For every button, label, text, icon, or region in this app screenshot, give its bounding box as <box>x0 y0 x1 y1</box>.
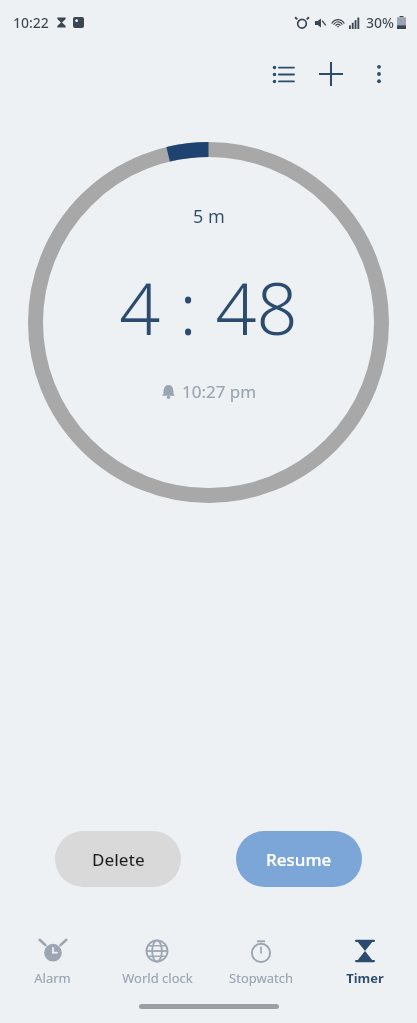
button[interactable]: More options <box>355 50 403 98</box>
button[interactable]: Timer list <box>259 50 307 98</box>
staticText: Delete <box>92 848 145 871</box>
button[interactable]: Add timer <box>307 50 355 98</box>
button[interactable]: Alarm <box>0 939 105 987</box>
staticText: Resume <box>266 848 332 871</box>
staticText: 5 m <box>193 204 225 229</box>
staticText: Timer <box>346 969 384 987</box>
staticText: Stopwatch <box>229 969 293 987</box>
button[interactable]: Resume <box>236 831 362 887</box>
staticText: Alarm <box>34 969 71 987</box>
button[interactable]: Timer <box>313 939 417 987</box>
button[interactable]: Stopwatch <box>209 939 313 987</box>
staticText: 10:22 <box>13 13 49 32</box>
button[interactable]: Delete <box>55 831 181 887</box>
staticText: 30% <box>366 13 394 32</box>
staticText: 10:27 pm <box>182 380 257 403</box>
button[interactable]: World clock <box>105 939 209 987</box>
staticText: World clock <box>122 969 193 987</box>
staticText: 4 : 48 <box>119 258 298 356</box>
